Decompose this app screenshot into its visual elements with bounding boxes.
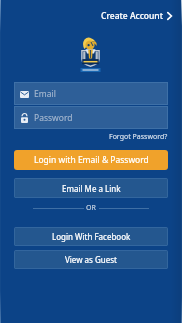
button[interactable]: Login With Facebook	[14, 227, 168, 246]
staticText: View as Guest	[65, 254, 117, 265]
staticText: OR	[86, 203, 96, 213]
staticText: Password	[34, 112, 73, 124]
button[interactable]: Password	[14, 106, 168, 129]
staticText: Login With Facebook	[52, 231, 131, 242]
staticText: Login with Email & Password	[34, 154, 149, 166]
button[interactable]: Create Account	[100, 7, 172, 25]
button[interactable]: Email Me a Link	[14, 178, 168, 198]
staticText: Forgot Password?	[109, 132, 168, 142]
staticText: Email	[34, 88, 56, 100]
button[interactable]: View as Guest	[14, 250, 168, 269]
staticText: Create Account	[101, 10, 163, 22]
staticText: Email Me a Link	[62, 183, 121, 194]
button[interactable]: Forgot Password?	[108, 131, 168, 143]
button[interactable]: Email	[14, 82, 168, 105]
button[interactable]: Login with Email & Password	[14, 150, 168, 170]
